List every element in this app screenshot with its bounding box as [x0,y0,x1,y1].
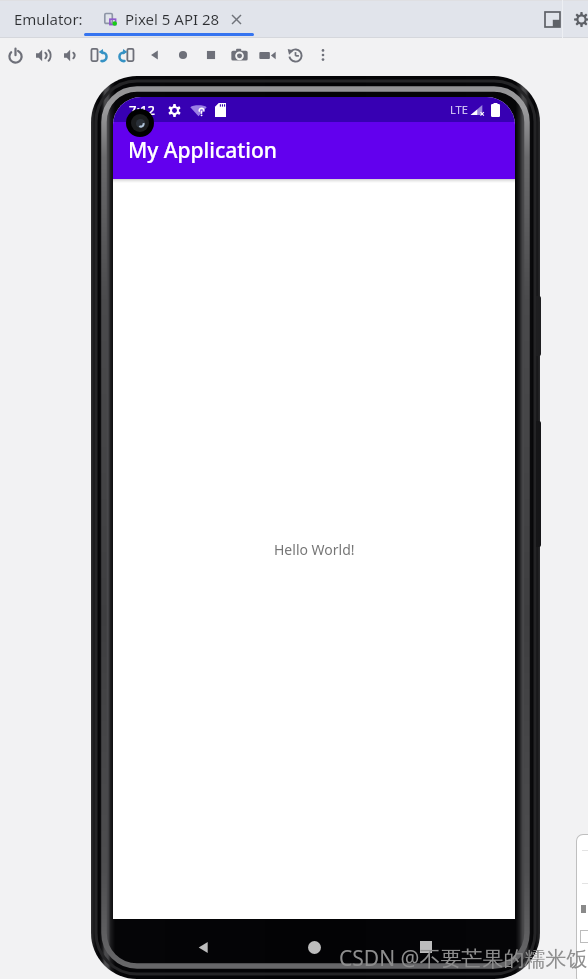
button[interactable]: Power [1,40,29,70]
staticText: LTE [450,102,468,117]
button[interactable]: Home [292,925,336,969]
button[interactable]: Rotate right [113,40,141,70]
button[interactable]: Record screen [253,40,281,70]
button[interactable]: Pixel 5 API 28 [84,0,254,38]
button[interactable]: Screenshot [225,40,253,70]
button[interactable]: Rotate left [85,40,113,70]
button[interactable]: Hide panel [544,11,560,27]
button[interactable]: Overview [197,40,225,70]
staticText: 7:12 [129,101,155,119]
staticText: My Application [128,136,277,165]
button[interactable]: More [309,40,337,70]
button[interactable]: History [281,40,309,70]
staticText: Pixel 5 API 28 [125,9,220,29]
button[interactable]: Back [181,925,225,969]
button[interactable]: Volume down [57,40,85,70]
button[interactable]: Close tab [229,12,244,27]
button[interactable]: Recent apps [404,925,448,969]
staticText: CSDN @不要芒果的糯米饭 [339,944,588,973]
button[interactable]: Volume up [29,40,57,70]
staticText: Emulator: [14,9,83,29]
button[interactable]: Settings [573,11,588,27]
button[interactable]: Home [169,40,197,70]
staticText: Hello World! [274,540,355,559]
button[interactable]: Back [141,40,169,70]
